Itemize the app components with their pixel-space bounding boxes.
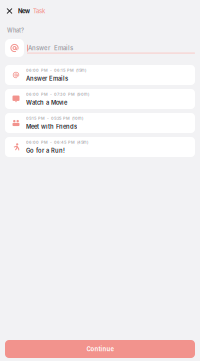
button[interactable]: 05:15 PM - 05:25 PM (10m): [5, 113, 195, 133]
staticText: Go for a Run!: [26, 147, 65, 154]
button[interactable]: Continue: [5, 340, 195, 358]
staticText: Task: [33, 7, 45, 15]
staticText: 06:00 PM - 06:45 PM (45m): [26, 140, 88, 145]
staticText: 06:00 PM - 07:30 PM (90m): [26, 92, 89, 97]
button[interactable]: 06:00 PM - 06:45 PM (45m): [5, 137, 195, 157]
staticText: 05:15 PM - 05:25 PM (10m): [26, 116, 83, 121]
staticText: Answer Emails: [26, 75, 68, 82]
staticText: Answer Emails: [28, 44, 73, 52]
button[interactable]: 06:00 PM - 07:30 PM (90m): [5, 89, 195, 109]
staticText: 06:00 PM - 06:15 PM (15m): [26, 68, 86, 73]
staticText: New: [18, 7, 30, 15]
staticText: Meet with Friends: [26, 123, 77, 130]
staticText: What?: [7, 27, 24, 34]
button[interactable]: Close: [4, 2, 15, 19]
staticText: Continue: [86, 345, 113, 353]
button[interactable]: 06:00 PM - 06:15 PM (15m): [5, 65, 195, 85]
staticText: Watch a Movie: [26, 99, 67, 106]
